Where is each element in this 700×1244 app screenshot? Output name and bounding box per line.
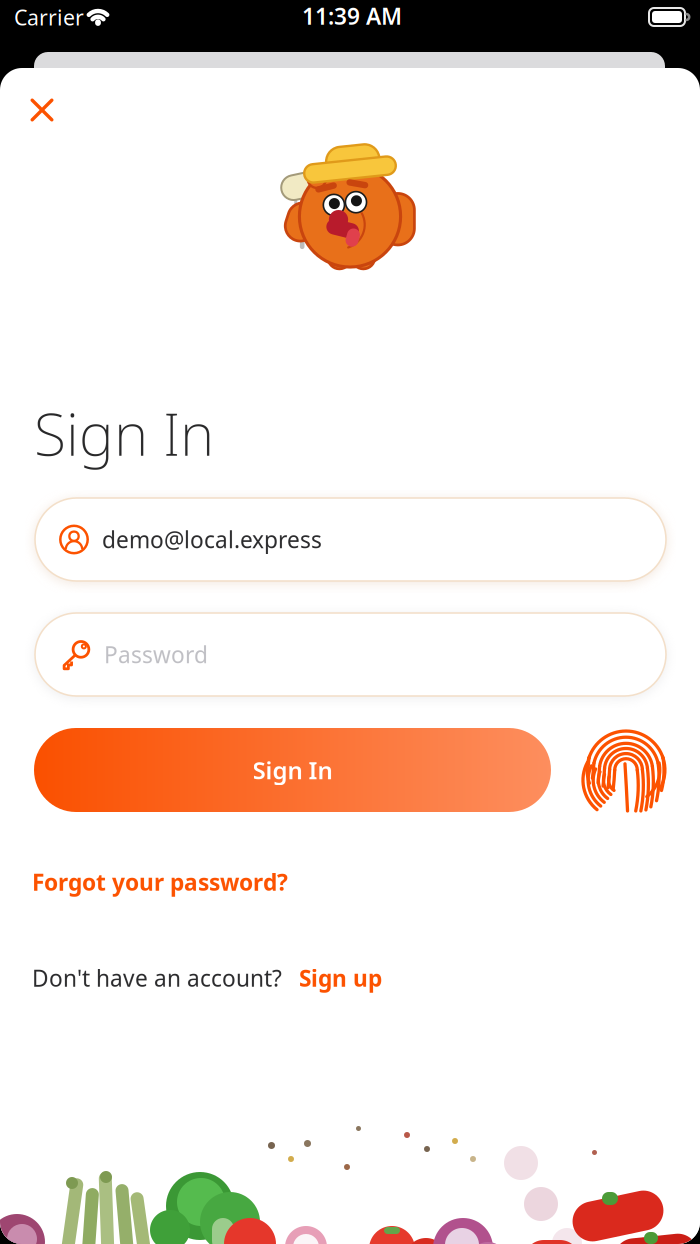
staticText: demo@local.express bbox=[102, 524, 322, 554]
staticText: Password bbox=[104, 639, 208, 669]
staticText: Forgot your password? bbox=[32, 867, 288, 897]
button[interactable]: Sign In bbox=[34, 728, 551, 812]
staticText: 11:39 AM bbox=[302, 1, 402, 31]
button[interactable]: demo@local.express bbox=[35, 498, 666, 581]
staticText: Don't have an account? bbox=[32, 963, 282, 993]
staticText: Sign In bbox=[34, 394, 214, 472]
staticText: Sign In bbox=[252, 754, 332, 786]
staticText: Carrier bbox=[14, 3, 84, 31]
button[interactable]: Sign up bbox=[299, 963, 382, 993]
button[interactable]: Password bbox=[35, 613, 666, 696]
button[interactable]: Sign in with Touch ID bbox=[584, 729, 668, 813]
button[interactable]: Forgot your password? bbox=[32, 867, 288, 897]
staticText: Sign up bbox=[299, 963, 382, 993]
button[interactable]: Close bbox=[14, 82, 70, 138]
